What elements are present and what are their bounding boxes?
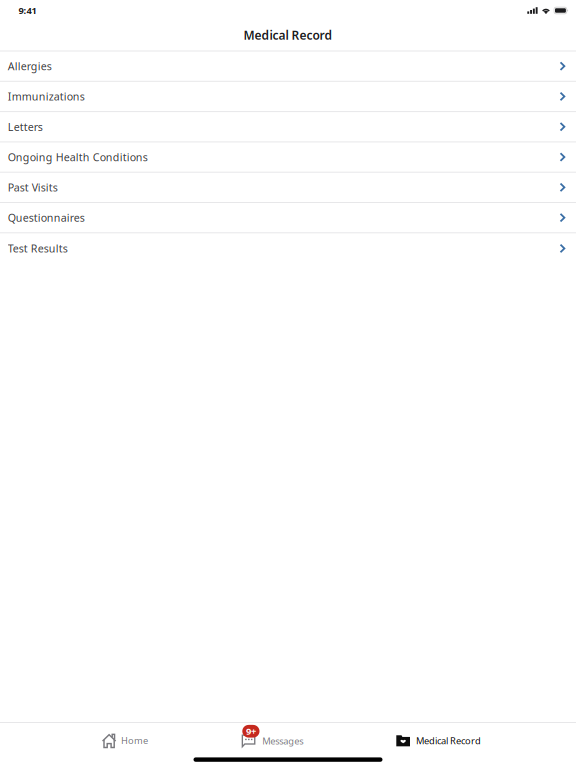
staticText: Medical Record [243,27,332,43]
button[interactable]: Medical Record [396,723,481,753]
button[interactable]: Past Visits [0,173,576,203]
staticText: Ongoing Health Conditions [8,150,148,164]
button[interactable]: Allergies [0,51,576,82]
staticText: 9:41 [18,4,36,17]
button[interactable]: Test Results [0,233,576,264]
staticText: Allergies [8,59,52,73]
staticText: Past Visits [8,180,58,194]
button[interactable]: Home [102,723,148,753]
staticText: Medical Record [416,734,481,747]
button[interactable]: Letters [0,112,576,142]
staticText: Immunizations [8,89,85,104]
staticText: Questionnaires [8,211,85,225]
staticText: Test Results [8,241,68,256]
staticText: 9+ [246,725,256,737]
staticText: Messages [262,735,303,747]
staticText: Letters [8,120,43,134]
button[interactable]: Immunizations [0,82,576,112]
button[interactable]: Questionnaires [0,203,576,233]
button[interactable]: Ongoing Health Conditions [0,142,576,173]
button[interactable]: 9+ [242,723,303,753]
staticText: Home [121,734,148,747]
